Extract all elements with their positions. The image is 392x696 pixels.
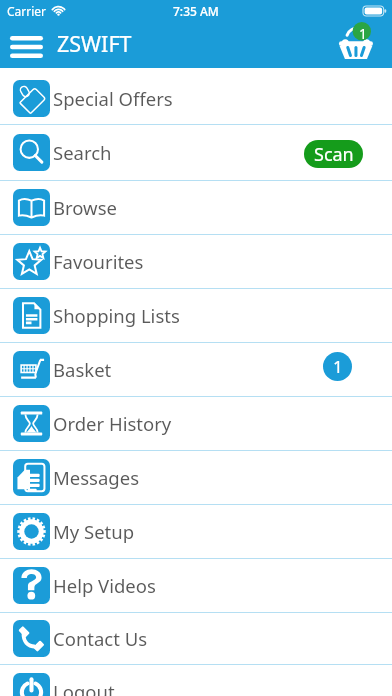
staticText: Basket bbox=[53, 357, 112, 382]
staticText: Contact Us bbox=[53, 626, 148, 651]
button[interactable]: Special Offers bbox=[0, 68, 392, 125]
staticText: Messages bbox=[53, 465, 139, 490]
staticText: Scan bbox=[314, 142, 354, 167]
staticText: 1 bbox=[333, 355, 343, 378]
button[interactable]: Browse bbox=[0, 181, 392, 235]
staticText: 1 bbox=[359, 24, 368, 43]
staticText: Search bbox=[53, 140, 112, 165]
staticText: ZSWIFT bbox=[57, 29, 132, 58]
staticText: 7:35 AM bbox=[173, 3, 219, 19]
button[interactable]: Basket bbox=[0, 343, 392, 397]
button[interactable]: Help Videos bbox=[0, 559, 392, 613]
staticText: Carrier bbox=[7, 3, 47, 19]
button[interactable]: Shopping Lists bbox=[0, 289, 392, 343]
button[interactable]: Search bbox=[0, 125, 392, 181]
button[interactable]: Menu bbox=[4, 25, 49, 69]
staticText: Help Videos bbox=[53, 573, 156, 598]
staticText: Favourites bbox=[53, 249, 144, 274]
staticText: My Setup bbox=[53, 519, 135, 544]
button[interactable]: Basket bbox=[334, 23, 378, 67]
button[interactable]: Contact Us bbox=[0, 613, 392, 665]
button[interactable]: Messages bbox=[0, 451, 392, 505]
staticText: Browse bbox=[53, 195, 117, 220]
button[interactable]: Logout bbox=[0, 665, 392, 696]
button[interactable]: Favourites bbox=[0, 235, 392, 289]
button[interactable]: My Setup bbox=[0, 505, 392, 559]
button[interactable]: 1 bbox=[323, 352, 352, 381]
staticText: Shopping Lists bbox=[53, 303, 180, 328]
staticText: Order History bbox=[53, 411, 172, 436]
button[interactable]: Scan bbox=[304, 140, 363, 168]
staticText: Special Offers bbox=[53, 86, 173, 111]
button[interactable]: Order History bbox=[0, 397, 392, 451]
staticText: Logout bbox=[53, 679, 115, 696]
